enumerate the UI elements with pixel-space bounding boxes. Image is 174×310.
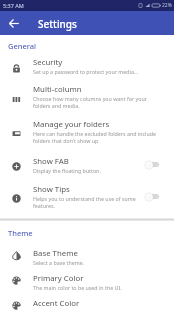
staticText: Theme xyxy=(8,228,33,238)
staticText: folders that don't show up xyxy=(33,137,99,144)
staticText: Select a base theme. xyxy=(33,259,85,266)
staticText: Helps you to understand the use of some xyxy=(33,195,136,202)
staticText: Security xyxy=(33,57,63,68)
button[interactable]: Accent Color xyxy=(0,294,174,310)
staticText: The main color to be used in the UI. xyxy=(33,284,122,291)
button[interactable]: Manage your folders xyxy=(0,114,174,148)
staticText: Accent Color xyxy=(33,298,80,309)
button[interactable]: Toggle xyxy=(144,191,159,202)
staticText: Primary Color xyxy=(33,273,84,284)
button[interactable]: Back xyxy=(2,11,26,35)
button[interactable]: Security xyxy=(0,52,174,79)
button[interactable]: Base Theme xyxy=(0,244,174,269)
staticText: Here can handle the excluded folders and… xyxy=(33,130,156,137)
staticText: Set up a password to protect your media.… xyxy=(33,68,139,75)
button[interactable]: Show Tips xyxy=(0,179,174,213)
staticText: Choose how many columns you want for you… xyxy=(33,95,147,102)
staticText: 5:37 AM xyxy=(3,2,24,9)
staticText: features. xyxy=(33,202,55,209)
staticText: Show Tips xyxy=(33,184,70,195)
staticText: Settings xyxy=(38,17,77,31)
staticText: General xyxy=(8,41,37,51)
staticText: folders and media. xyxy=(33,102,80,109)
staticText: 22% xyxy=(162,2,172,9)
button[interactable]: Show FAB xyxy=(0,151,174,178)
staticText: Display the floating button. xyxy=(33,167,101,174)
staticText: Base Theme xyxy=(33,248,78,259)
staticText: Manage your folders xyxy=(33,119,110,130)
button[interactable]: Multi-column xyxy=(0,79,174,113)
staticText: Show FAB xyxy=(33,156,69,167)
button[interactable]: Toggle xyxy=(144,159,159,170)
staticText: Multi-column xyxy=(33,84,82,95)
button[interactable]: Primary Color xyxy=(0,269,174,294)
